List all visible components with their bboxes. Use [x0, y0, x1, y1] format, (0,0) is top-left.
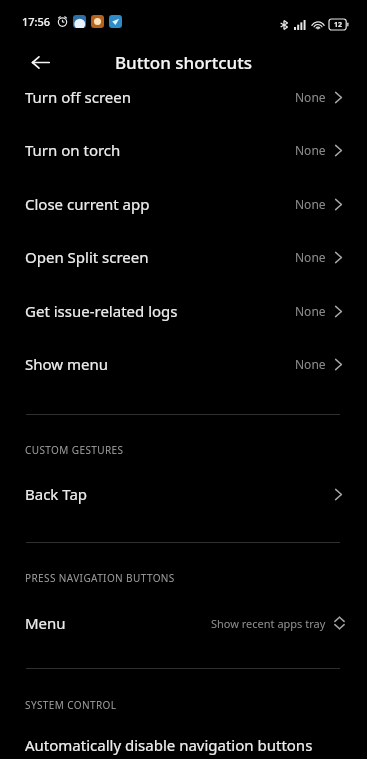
staticText: SYSTEM CONTROL — [25, 698, 117, 712]
staticText: Close current app — [25, 194, 150, 214]
staticText: None — [295, 196, 326, 212]
button[interactable]: Close current app — [0, 178, 367, 230]
staticText: CUSTOM GESTURES — [25, 443, 124, 457]
staticText: None — [295, 142, 326, 158]
staticText: Automatically disable navigation buttons — [25, 735, 313, 755]
button[interactable]: Turn off screen — [0, 71, 367, 123]
button[interactable]: Automatically disable navigation buttons — [0, 730, 367, 759]
button[interactable]: Turn on torch — [0, 124, 367, 176]
staticText: Get issue-related logs — [25, 301, 178, 321]
staticText: 17:56 — [22, 14, 51, 29]
staticText: Show menu — [25, 354, 108, 374]
staticText: Button shortcuts — [115, 51, 253, 74]
button[interactable]: Open Split screen — [0, 231, 367, 283]
staticText: Open Split screen — [25, 247, 149, 267]
staticText: None — [295, 249, 326, 265]
button[interactable]: Show menu — [0, 338, 367, 390]
staticText: 12 — [334, 20, 343, 30]
staticText: None — [295, 89, 326, 105]
staticText: PRESS NAVIGATION BUTTONS — [25, 571, 175, 585]
button[interactable]: Menu — [0, 597, 367, 649]
button[interactable]: Back — [22, 44, 58, 80]
staticText: None — [295, 356, 326, 372]
staticText: None — [295, 303, 326, 319]
button[interactable]: Get issue-related logs — [0, 285, 367, 337]
button[interactable]: Back Tap — [0, 468, 367, 520]
staticText: Turn on torch — [25, 140, 121, 160]
staticText: Menu — [25, 613, 66, 633]
staticText: Turn off screen — [25, 87, 131, 107]
staticText: Back Tap — [25, 484, 88, 504]
staticText: Show recent apps tray — [211, 616, 326, 631]
